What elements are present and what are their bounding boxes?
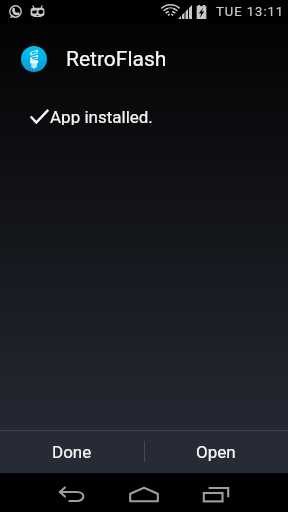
staticText: Done [52, 442, 92, 462]
staticText: TUE 13:11 [216, 4, 285, 19]
button[interactable]: Home [108, 473, 180, 512]
staticText: RetroFlash [66, 47, 167, 72]
staticText: App installed. [50, 107, 153, 125]
button[interactable]: Recent apps [180, 473, 252, 512]
staticText: Open [196, 442, 236, 462]
button[interactable]: Done [0, 430, 144, 473]
button[interactable]: Back [36, 473, 108, 512]
button[interactable]: Open [144, 430, 288, 473]
